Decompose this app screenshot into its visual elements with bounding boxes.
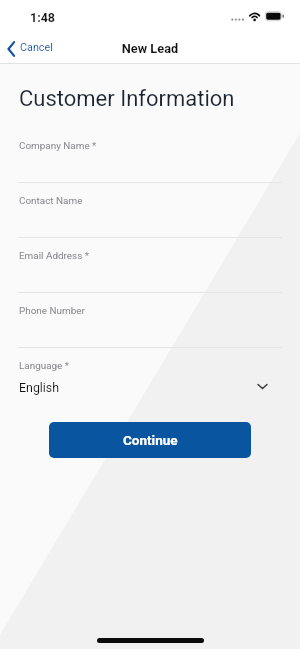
- staticText: Cancel: [20, 41, 53, 54]
- staticText: Customer Information: [19, 86, 235, 112]
- button[interactable]: Company Name *: [0, 128, 300, 183]
- staticText: Email Address *: [19, 250, 89, 262]
- button[interactable]: Contact Name: [0, 183, 300, 238]
- staticText: New Lead: [0, 41, 300, 56]
- staticText: Language *: [19, 360, 70, 372]
- button[interactable]: Email Address *: [0, 238, 300, 293]
- button[interactable]: Phone Number: [0, 293, 300, 348]
- staticText: Continue: [123, 432, 178, 448]
- button[interactable]: Language *: [0, 348, 300, 394]
- staticText: Contact Name: [19, 195, 83, 207]
- staticText: Company Name *: [19, 140, 97, 152]
- staticText: Phone Number: [19, 305, 85, 317]
- staticText: 1:48: [30, 10, 56, 25]
- staticText: English: [19, 380, 60, 395]
- button[interactable]: Continue: [49, 422, 251, 458]
- button[interactable]: Cancel: [2, 35, 61, 57]
